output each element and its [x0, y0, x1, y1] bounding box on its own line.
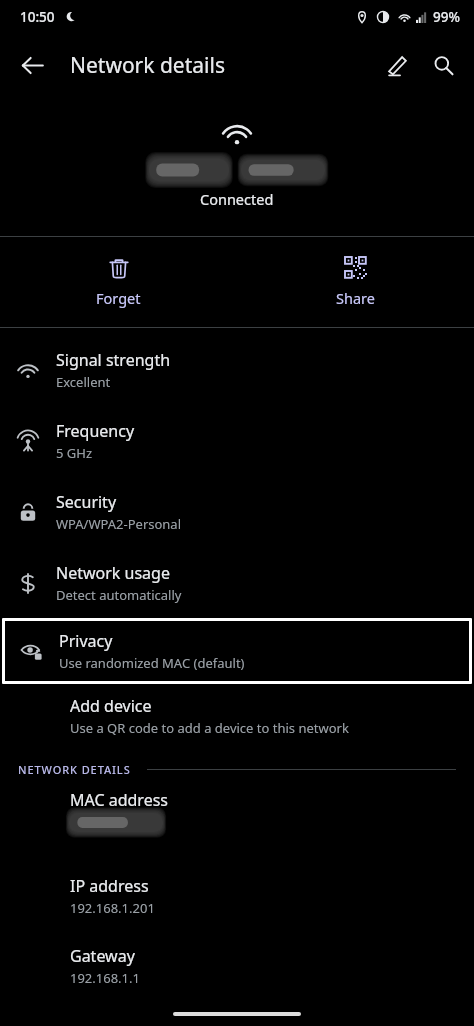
staticText: NETWORK DETAILS	[18, 762, 131, 777]
staticText: WPA/WPA2-Personal	[56, 515, 182, 533]
staticText: Share	[336, 288, 375, 308]
button[interactable]: Forget	[0, 237, 237, 327]
button[interactable]: Back	[8, 41, 56, 89]
staticText: 10:50	[20, 8, 55, 26]
staticText: Signal strength	[56, 349, 171, 371]
staticText: Add device	[70, 695, 152, 717]
staticText: 5 GHz	[56, 444, 93, 462]
button[interactable]: Signal strength	[0, 334, 474, 405]
staticText: Forget	[96, 288, 141, 308]
button[interactable]: Search	[420, 42, 466, 88]
button[interactable]: Frequency	[0, 405, 474, 476]
staticText: Use a QR code to add a device to this ne…	[70, 719, 349, 737]
staticText: Network usage	[56, 562, 170, 584]
staticText: Security	[56, 491, 117, 513]
staticText: Network details	[70, 51, 225, 80]
staticText: Detect automatically	[56, 586, 182, 604]
staticText: 192.168.1.201	[70, 899, 155, 917]
button[interactable]: Add device	[0, 684, 474, 748]
staticText: 99%	[433, 8, 460, 26]
staticText: Frequency	[56, 420, 135, 442]
button[interactable]: Network usage	[0, 547, 474, 618]
button[interactable]: Privacy	[5, 621, 469, 681]
button[interactable]: Security	[0, 476, 474, 547]
button[interactable]: Share	[237, 237, 474, 327]
staticText: Excellent	[56, 373, 111, 391]
staticText: MAC address	[70, 789, 168, 811]
staticText: 192.168.1.1	[70, 969, 140, 987]
staticText: Gateway	[70, 945, 135, 967]
staticText: Use randomized MAC (default)	[59, 654, 245, 672]
button[interactable]: Edit	[374, 42, 420, 88]
staticText: Privacy	[59, 630, 113, 652]
staticText: Connected	[200, 189, 274, 209]
staticText: IP address	[70, 875, 149, 897]
